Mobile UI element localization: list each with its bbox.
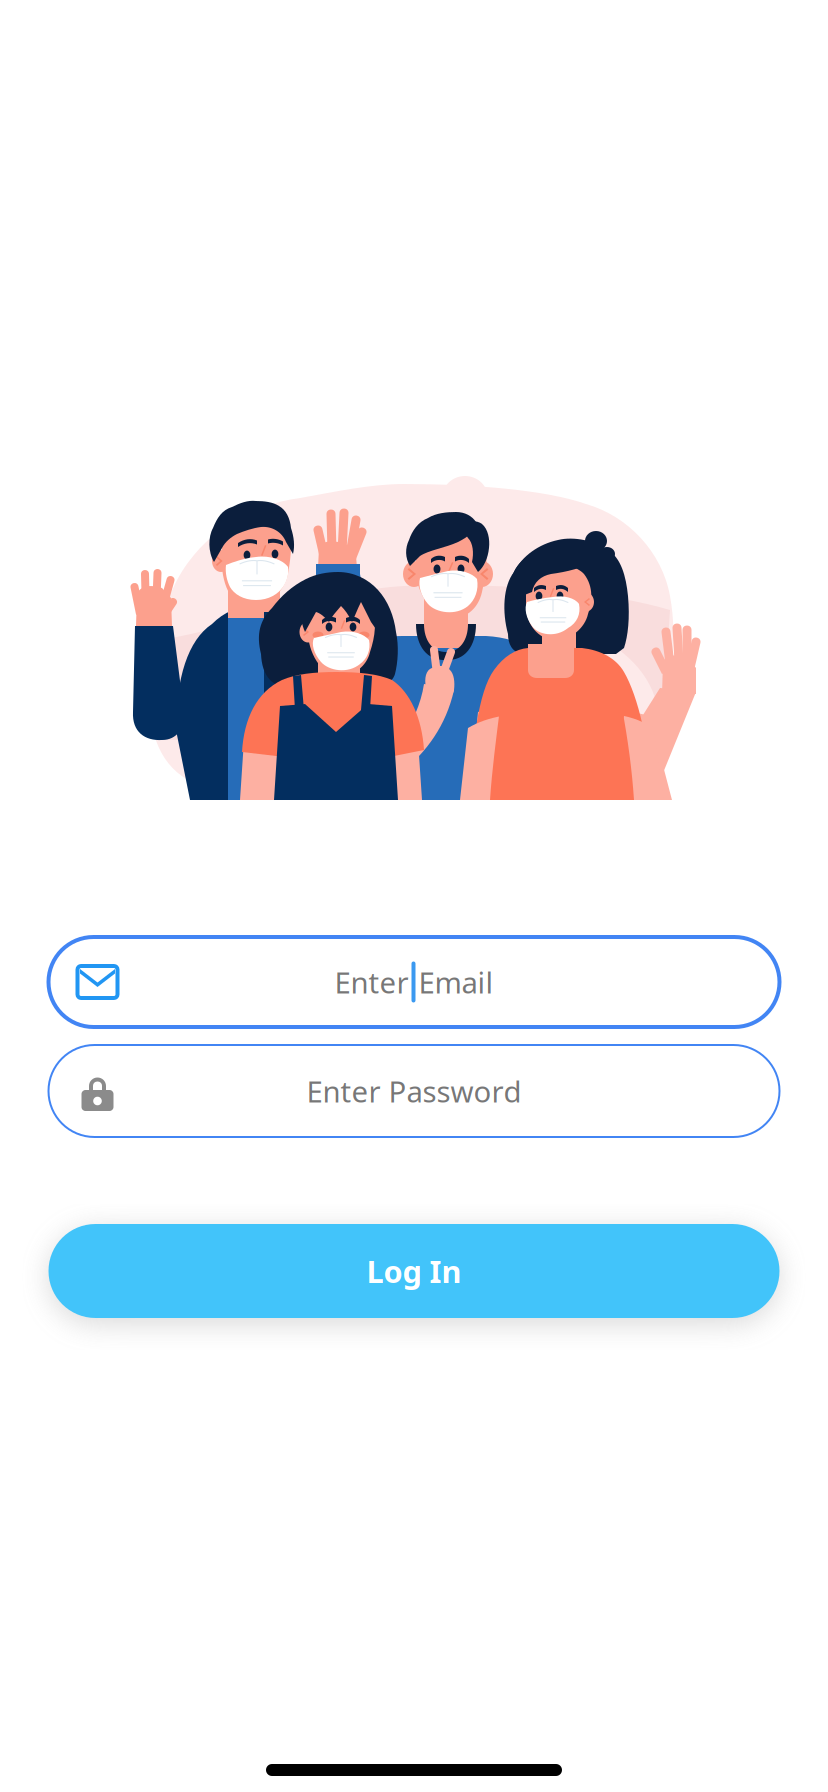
staticText: Email xyxy=(418,962,493,1001)
staticText: Enter Password xyxy=(306,1071,521,1110)
staticText: Log In xyxy=(366,1251,461,1291)
staticText: Enter xyxy=(334,962,408,1001)
button[interactable]: Log In xyxy=(48,1224,779,1318)
